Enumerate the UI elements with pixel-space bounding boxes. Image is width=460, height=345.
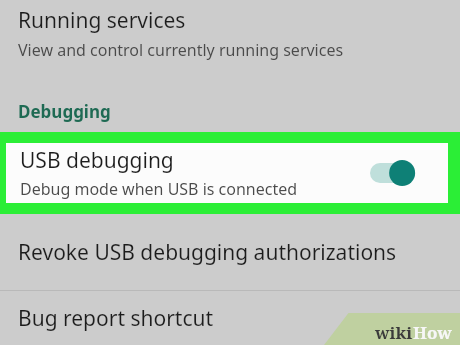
button[interactable]: Revoke USB debugging authorizations <box>0 214 460 290</box>
button[interactable]: Bug report shortcut <box>0 291 460 345</box>
staticText: View and control currently running servi… <box>18 39 344 61</box>
staticText: Bug report shortcut <box>18 304 214 333</box>
staticText: Revoke USB debugging authorizations <box>18 238 397 267</box>
button[interactable]: USB debugging <box>6 143 448 203</box>
button[interactable]: Running services <box>0 0 460 90</box>
staticText: Debug mode when USB is connected <box>20 178 298 200</box>
staticText: Running services <box>18 6 186 35</box>
staticText: Debugging <box>18 100 111 123</box>
staticText: USB debugging <box>20 146 174 175</box>
button[interactable]: Toggle USB debugging <box>370 156 422 190</box>
staticText: wiki <box>375 321 413 344</box>
staticText: How <box>413 321 452 344</box>
